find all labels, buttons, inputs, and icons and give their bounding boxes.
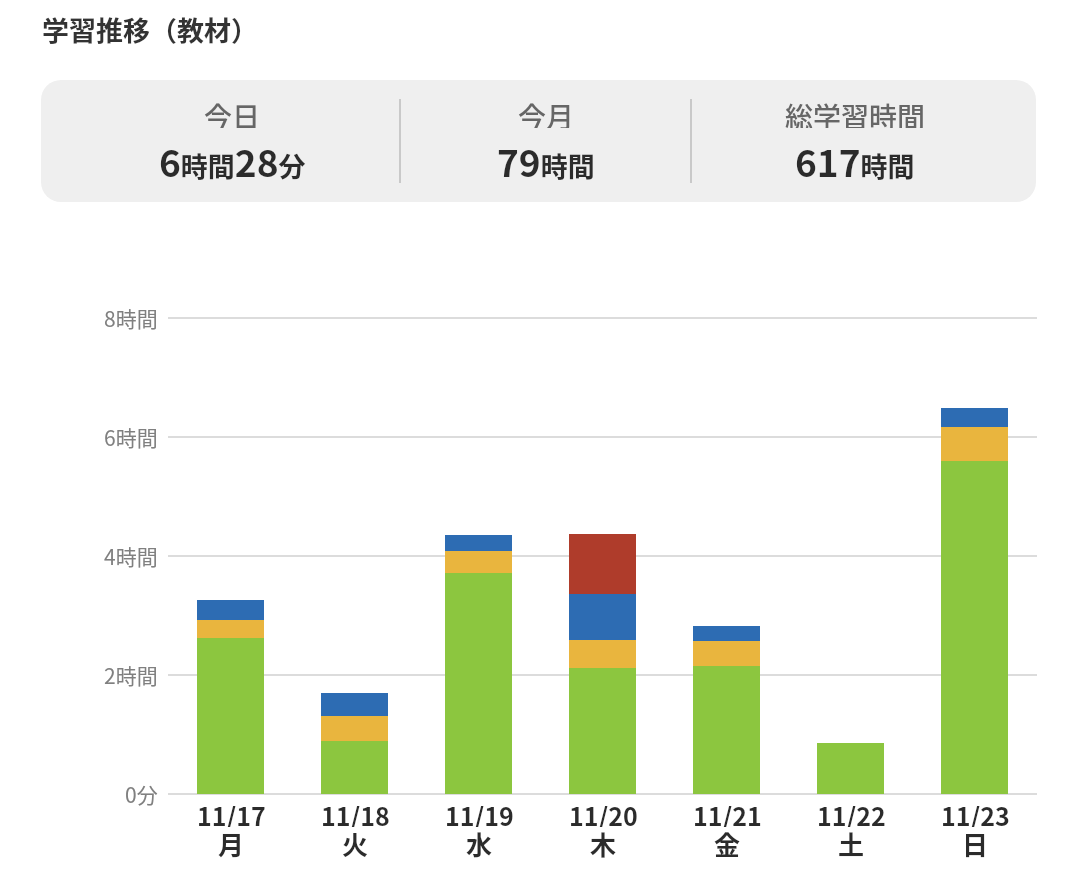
staticText: 11/23 (941, 797, 1010, 827)
staticText: 木 (590, 825, 617, 861)
staticText: 617時間 (795, 134, 915, 187)
button[interactable] (41, 80, 1036, 202)
staticText: 総学習時間 (785, 96, 926, 128)
staticText: 日 (962, 825, 989, 861)
staticText: 8時間 (104, 303, 158, 333)
staticText: 火 (342, 825, 369, 861)
staticText: 今日 (204, 96, 261, 128)
staticText: 6時間 (104, 422, 158, 452)
staticText: 79時間 (497, 134, 595, 187)
staticText: 0分 (125, 779, 158, 809)
staticText: 金 (714, 825, 741, 861)
staticText: 11/22 (817, 797, 886, 827)
staticText: 11/17 (197, 797, 266, 827)
staticText: 水 (466, 825, 493, 861)
staticText: 学習推移（教材） (42, 10, 258, 49)
staticText: 6時間28分 (159, 134, 306, 187)
staticText: 11/19 (445, 797, 514, 827)
staticText: 11/21 (693, 797, 762, 827)
staticText: 4時間 (104, 541, 158, 571)
staticText: 月 (218, 825, 245, 861)
staticText: 今月 (518, 96, 575, 128)
staticText: 土 (838, 825, 865, 861)
staticText: 2時間 (104, 660, 158, 690)
staticText: 11/18 (321, 797, 390, 827)
staticText: 11/20 (569, 797, 638, 827)
